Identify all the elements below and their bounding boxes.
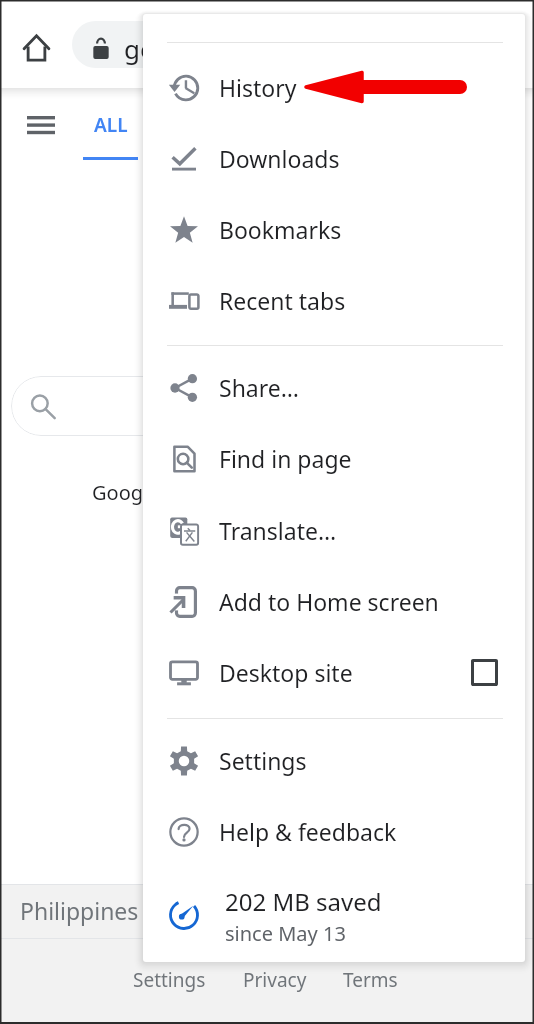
staticText: Translate…: [219, 515, 337, 546]
staticText: Share…: [219, 372, 299, 403]
button[interactable]: Share…: [143, 359, 525, 415]
button[interactable]: Downloads: [143, 130, 525, 186]
staticText: Bookmarks: [219, 214, 342, 245]
button[interactable]: Help & feedback: [143, 803, 525, 859]
staticText: Find in page: [219, 443, 352, 474]
button[interactable]: Philippines: [20, 895, 139, 926]
staticText: Help & feedback: [219, 816, 397, 847]
staticText: History: [219, 72, 297, 103]
staticText: 202 MB saved: [225, 885, 382, 918]
staticText: Google Search: [92, 479, 228, 506]
button[interactable]: Desktop site: [143, 644, 525, 700]
button[interactable]: ALL: [83, 95, 138, 160]
staticText: Recent tabs: [219, 285, 346, 316]
button[interactable]: Terms: [343, 967, 398, 993]
button[interactable]: Settings: [143, 732, 525, 788]
button[interactable]: Settings: [133, 967, 206, 993]
button[interactable]: Menu: [20, 105, 61, 146]
staticText: Downloads: [219, 143, 340, 174]
button[interactable]: 202 MB saved: [143, 880, 525, 950]
button[interactable]: Recent tabs: [143, 272, 525, 328]
staticText: Desktop site: [219, 657, 353, 688]
button[interactable]: google.com: [72, 21, 492, 68]
button[interactable]: History: [143, 59, 525, 115]
staticText: Settings: [219, 745, 307, 776]
button[interactable]: [11, 376, 461, 436]
staticText: ALL: [94, 112, 128, 138]
staticText: since May 13: [225, 920, 346, 947]
button[interactable]: Add to Home screen: [143, 573, 525, 629]
staticText: google.com: [124, 31, 269, 66]
button[interactable]: Desktop site checkbox: [471, 659, 498, 686]
button[interactable]: Home: [16, 27, 56, 67]
staticText: Add to Home screen: [219, 586, 439, 617]
button[interactable]: Privacy: [243, 967, 307, 993]
button[interactable]: Translate…: [143, 502, 525, 558]
button[interactable]: Bookmarks: [143, 201, 525, 257]
button[interactable]: Find in page: [143, 430, 525, 486]
